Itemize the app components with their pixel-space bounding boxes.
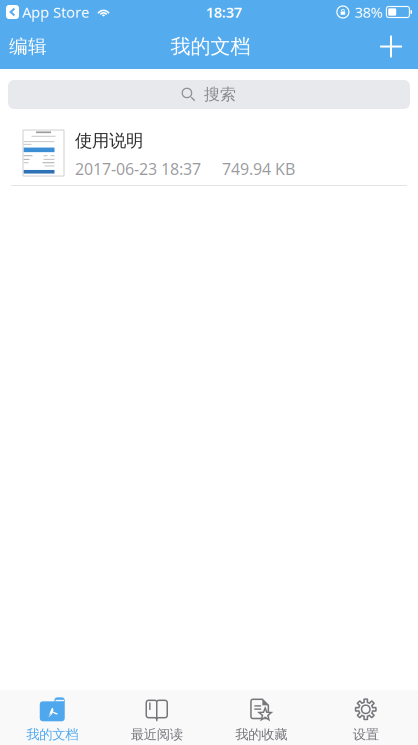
staticText: 编辑: [9, 35, 47, 58]
staticText: 我的文档: [170, 34, 250, 59]
staticText: 2017-06-23 18:37: [75, 158, 201, 179]
button[interactable]: Add document: [369, 24, 418, 68]
staticText: 38%: [354, 2, 382, 22]
staticText: 设置: [353, 726, 379, 743]
button[interactable]: 我的文档: [0, 690, 104, 745]
staticText: 我的收藏: [235, 726, 287, 743]
button[interactable]: 设置: [313, 690, 418, 745]
staticText: 最近阅读: [131, 726, 183, 743]
staticText: 使用说明: [75, 130, 143, 151]
staticText: 18:37: [206, 2, 242, 22]
button[interactable]: 最近阅读: [104, 690, 209, 745]
staticText: App Store: [22, 2, 89, 22]
button[interactable]: 编辑: [0, 25, 58, 68]
staticText: 749.94 KB: [222, 158, 295, 179]
button[interactable]: 使用说明: [0, 119, 418, 186]
staticText: 搜索: [204, 85, 236, 104]
button[interactable]: Search: [8, 80, 410, 109]
staticText: 我的文档: [26, 726, 78, 743]
button[interactable]: 我的收藏: [209, 690, 313, 745]
